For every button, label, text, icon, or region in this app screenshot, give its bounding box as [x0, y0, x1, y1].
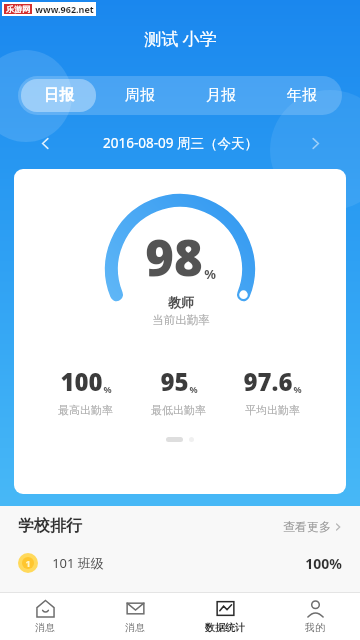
button[interactable]: 年报 — [264, 79, 339, 112]
staticText: 教师 — [168, 294, 194, 310]
button[interactable]: Next day — [302, 130, 328, 156]
button[interactable]: Previous day — [32, 130, 58, 156]
staticText: 日报 — [44, 86, 74, 105]
button[interactable]: 消息 — [0, 592, 90, 640]
staticText: 100 — [60, 365, 103, 398]
staticText: 学校排行 — [18, 516, 82, 536]
staticText: 数据统计 — [205, 621, 245, 634]
staticText: www.962.net — [35, 3, 94, 15]
staticText: 最低出勤率 — [151, 403, 206, 417]
button[interactable]: 数据统计 — [180, 592, 270, 640]
button[interactable]: 我的 — [270, 592, 360, 640]
staticText: % — [103, 383, 112, 395]
staticText: 2016-08-09 周三（今天） — [103, 134, 258, 152]
button[interactable]: 月报 — [183, 79, 258, 112]
staticText: 年报 — [287, 86, 317, 105]
staticText: 97.6 — [243, 365, 293, 398]
staticText: 101 班级 — [52, 554, 104, 572]
button[interactable]: 1 — [18, 546, 342, 580]
staticText: % — [204, 265, 216, 283]
staticText: 查看更多 — [283, 519, 331, 534]
staticText: 测试 小学 — [144, 27, 217, 50]
staticText: % — [293, 383, 302, 395]
staticText: 当前出勤率 — [152, 313, 210, 327]
staticText: 我的 — [305, 621, 325, 634]
staticText: 消息 — [35, 621, 55, 634]
staticText: 乐游网 — [6, 4, 30, 14]
button[interactable]: 消息 — [90, 592, 180, 640]
button[interactable]: 查看更多 — [283, 519, 342, 534]
staticText: 100% — [305, 554, 342, 573]
staticText: 消息 — [125, 621, 145, 634]
button[interactable]: 日报 — [21, 79, 96, 112]
staticText: 98 — [145, 224, 203, 291]
button[interactable]: 周报 — [102, 79, 177, 112]
staticText: 月报 — [206, 86, 236, 105]
staticText: % — [189, 383, 198, 395]
staticText: 95 — [160, 365, 189, 398]
staticText: 1 — [25, 557, 31, 569]
staticText: 平均出勤率 — [245, 403, 300, 417]
staticText: 周报 — [125, 86, 155, 105]
staticText: 最高出勤率 — [58, 403, 113, 417]
